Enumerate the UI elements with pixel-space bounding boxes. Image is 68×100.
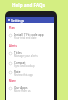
button[interactable]: Plan (9, 26, 15, 30)
staticText: More (9, 79, 16, 83)
button[interactable]: Compat (6, 60, 54, 67)
staticText: Install 7 Fit code app (14, 33, 44, 37)
button[interactable]: Menu (6, 17, 54, 23)
staticText: Compat (14, 61, 26, 65)
staticText: Settings (11, 18, 25, 23)
button[interactable]: More (9, 79, 16, 83)
staticText: Manage your alerts (14, 54, 38, 58)
staticText: Plan (9, 26, 15, 30)
staticText: Your trial end date (14, 36, 37, 40)
staticText: Help and FAQs (12, 2, 46, 8)
button[interactable]: Our Apps (6, 85, 54, 93)
staticText: Rate (14, 70, 21, 74)
button[interactable]: Titles (6, 50, 54, 59)
staticText: More from us (14, 89, 31, 93)
staticText: Titles (14, 51, 22, 55)
button[interactable]: Alerts (9, 44, 17, 48)
staticText: Review this app (14, 73, 33, 77)
staticText: Our Apps (14, 86, 28, 90)
button[interactable]: Rate (6, 69, 54, 77)
staticText: Sync and backup (14, 64, 35, 68)
button[interactable]: Install 7 Fit code app (6, 32, 54, 41)
staticText: Alerts (9, 44, 17, 48)
